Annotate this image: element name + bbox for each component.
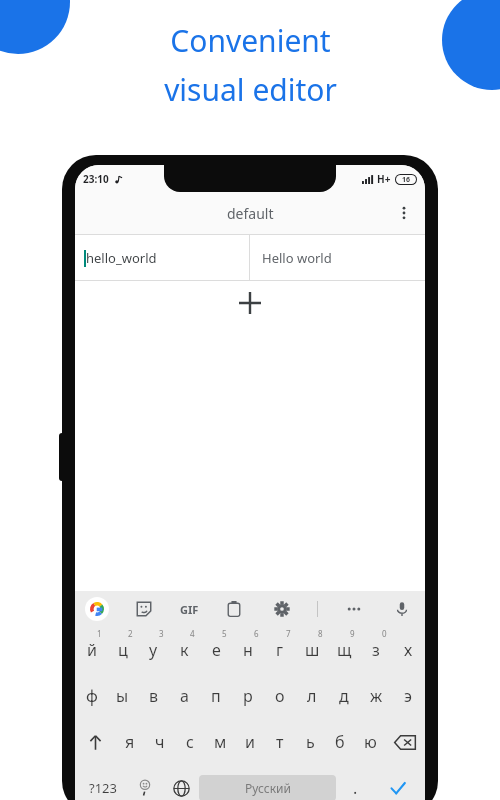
staticText: visual editor (164, 69, 337, 110)
button[interactable]: в (138, 673, 169, 719)
staticText: д (339, 685, 349, 707)
button[interactable]: Stickers (131, 596, 157, 622)
staticText: default (227, 204, 274, 223)
button[interactable]: ы (107, 673, 138, 719)
staticText: . (353, 777, 358, 799)
staticText: GIF (180, 602, 199, 617)
button[interactable]: . (336, 765, 375, 800)
button[interactable]: л (296, 673, 328, 719)
button[interactable]: о (264, 673, 296, 719)
staticText: ю (364, 731, 377, 753)
staticText: ?123 (89, 779, 117, 797)
button[interactable]: Switch language (163, 765, 199, 800)
staticText: 6 (254, 628, 259, 639)
staticText: р (243, 685, 253, 707)
staticText: ф (86, 685, 98, 707)
staticText: з (372, 639, 380, 661)
staticText: у (149, 639, 158, 661)
button[interactable]: ж (360, 673, 392, 719)
staticText: H+ (377, 172, 391, 186)
button[interactable]: з (360, 627, 392, 673)
staticText: н (243, 639, 253, 661)
staticText: э (404, 685, 412, 707)
staticText: ш (305, 639, 320, 661)
staticText: 8 (318, 628, 323, 639)
button[interactable]: Shift (76, 719, 115, 765)
staticText: 7 (286, 628, 291, 639)
button[interactable]: я (115, 719, 145, 765)
staticText: 23:10 (83, 172, 109, 186)
staticText: е (212, 639, 221, 661)
staticText: ы (116, 685, 129, 707)
button[interactable]: More keyboard options (341, 596, 367, 622)
staticText: 9 (350, 628, 355, 639)
button[interactable]: м (205, 719, 235, 765)
staticText: а (180, 685, 189, 707)
button[interactable]: е (200, 627, 232, 673)
button[interactable]: GIF (180, 596, 199, 622)
button[interactable]: ю (355, 719, 385, 765)
button[interactable]: щ (328, 627, 360, 673)
staticText: о (275, 685, 285, 707)
staticText: 16 (402, 175, 411, 184)
button[interactable]: Русский (199, 775, 336, 800)
button[interactable]: hello_world (75, 235, 425, 280)
staticText: я (125, 731, 135, 753)
button[interactable]: р (232, 673, 264, 719)
staticText: б (335, 731, 345, 753)
staticText: м (214, 731, 227, 753)
staticText: Русский (245, 780, 291, 796)
staticText: Convenient (170, 20, 331, 61)
staticText: й (87, 639, 97, 661)
button[interactable]: ш (296, 627, 328, 673)
staticText: ь (306, 731, 315, 753)
staticText: с (186, 731, 194, 753)
staticText: 0 (382, 628, 387, 639)
staticText: 2 (128, 628, 133, 639)
button[interactable]: г (264, 627, 296, 673)
staticText: 3 (159, 628, 164, 639)
staticText: х (404, 639, 413, 661)
button[interactable]: й (76, 627, 107, 673)
button[interactable]: ч (145, 719, 175, 765)
staticText: ж (370, 685, 383, 707)
button[interactable]: More options (387, 196, 421, 230)
staticText: Hello world (262, 249, 332, 267)
button[interactable]: а (169, 673, 200, 719)
button[interactable]: Emoji (127, 765, 163, 800)
button[interactable]: п (200, 673, 232, 719)
button[interactable]: Google search (85, 597, 109, 621)
button[interactable]: к (169, 627, 200, 673)
staticText: т (276, 731, 284, 753)
button[interactable]: и (235, 719, 265, 765)
staticText: 1 (97, 628, 102, 639)
button[interactable]: Clipboard (221, 596, 247, 622)
staticText: п (211, 685, 221, 707)
button[interactable]: д (328, 673, 360, 719)
button[interactable]: у (138, 627, 169, 673)
button[interactable]: ц (107, 627, 138, 673)
button[interactable]: х (392, 627, 424, 673)
button[interactable]: Add row (232, 285, 268, 321)
staticText: 5 (222, 628, 227, 639)
button[interactable]: б (325, 719, 355, 765)
button[interactable]: Voice input (389, 596, 415, 622)
button[interactable]: э (392, 673, 424, 719)
button[interactable]: Keyboard settings (269, 596, 295, 622)
staticText: 4 (190, 628, 195, 639)
button[interactable]: Backspace (385, 719, 424, 765)
staticText: и (245, 731, 255, 753)
button[interactable]: ?123 (79, 765, 127, 800)
button[interactable]: Done (375, 765, 421, 800)
staticText: л (307, 685, 317, 707)
staticText: г (276, 639, 284, 661)
staticText: щ (337, 639, 352, 661)
button[interactable]: т (265, 719, 295, 765)
button[interactable]: н (232, 627, 264, 673)
staticText: ц (118, 639, 128, 661)
button[interactable]: ь (295, 719, 325, 765)
staticText: hello_world (86, 249, 157, 267)
button[interactable]: с (175, 719, 205, 765)
button[interactable]: ф (76, 673, 107, 719)
staticText: ч (155, 731, 165, 753)
